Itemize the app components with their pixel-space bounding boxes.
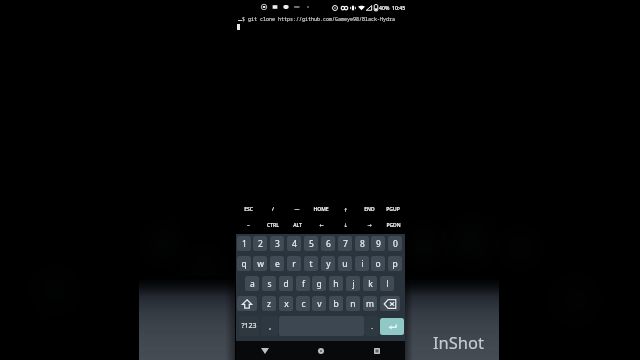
button[interactable]: PGUP: [381, 202, 405, 217]
button[interactable]: Recents: [349, 341, 405, 360]
button[interactable]: .: [364, 316, 379, 336]
staticText: c: [301, 298, 306, 310]
button[interactable]: /: [261, 202, 285, 217]
staticText: v: [317, 298, 322, 310]
button[interactable]: y: [321, 256, 335, 271]
staticText: o: [375, 258, 381, 270]
staticText: 3: [275, 238, 280, 250]
staticText: 10:45: [392, 4, 406, 11]
button[interactable]: c: [296, 296, 310, 311]
staticText: t: [309, 258, 313, 270]
button[interactable]: CTRL: [261, 217, 285, 233]
button[interactable]: 5: [304, 236, 318, 251]
button[interactable]: m: [363, 296, 377, 311]
button[interactable]: l: [380, 276, 394, 291]
staticText: .: [371, 322, 373, 331]
staticText: 8: [360, 238, 365, 250]
staticText: HOME: [313, 206, 329, 213]
staticText: PGUP: [386, 206, 400, 213]
button[interactable]: ↓: [333, 217, 357, 233]
button[interactable]: 9: [371, 236, 385, 251]
staticText: ←: [319, 222, 324, 228]
staticText: d: [283, 278, 289, 290]
button[interactable]: f: [296, 276, 310, 291]
button[interactable]: Shift: [237, 296, 257, 311]
button[interactable]: ?123: [239, 316, 259, 336]
button[interactable]: n: [346, 296, 360, 311]
button[interactable]: END: [357, 202, 381, 217]
button[interactable]: t: [304, 256, 318, 271]
button[interactable]: PGDN: [381, 217, 405, 233]
staticText: CTRL: [267, 222, 279, 229]
staticText: InShot: [433, 331, 484, 353]
staticText: 9: [376, 238, 381, 250]
button[interactable]: h: [329, 276, 343, 291]
button[interactable]: d: [279, 276, 293, 291]
button[interactable]: 3: [270, 236, 284, 251]
staticText: 0: [393, 238, 398, 250]
button[interactable]: 1: [237, 236, 251, 251]
button[interactable]: e: [270, 256, 284, 271]
button[interactable]: v: [312, 296, 326, 311]
staticText: 2: [258, 238, 263, 250]
button[interactable]: Home: [293, 341, 349, 360]
button[interactable]: 0: [388, 236, 402, 251]
staticText: z: [267, 298, 271, 310]
staticText: l: [386, 278, 389, 290]
button[interactable]: 2: [253, 236, 267, 251]
button[interactable]: q: [237, 256, 251, 271]
button[interactable]: s: [262, 276, 276, 291]
staticText: ?123: [241, 321, 257, 331]
button[interactable]: 6: [321, 236, 335, 251]
button[interactable]: w: [253, 256, 267, 271]
staticText: p: [392, 258, 398, 270]
button[interactable]: g: [312, 276, 326, 291]
staticText: →: [367, 222, 372, 228]
button[interactable]: o: [371, 256, 385, 271]
button[interactable]: u: [338, 256, 352, 271]
button[interactable]: p: [388, 256, 402, 271]
staticText: ALT: [293, 222, 302, 229]
staticText: b: [333, 298, 339, 310]
staticText: 1: [242, 238, 247, 250]
staticText: e: [275, 258, 280, 270]
button[interactable]: b: [329, 296, 343, 311]
button[interactable]: 8: [355, 236, 369, 251]
staticText: x: [284, 298, 289, 310]
button[interactable]: —: [285, 202, 309, 217]
button[interactable]: x: [279, 296, 293, 311]
button[interactable]: 4: [287, 236, 301, 251]
button[interactable]: i: [355, 256, 369, 271]
button[interactable]: ALT: [285, 217, 309, 233]
button[interactable]: k: [363, 276, 377, 291]
button[interactable]: ,: [261, 316, 278, 336]
button[interactable]: →: [357, 217, 381, 233]
button[interactable]: HOME: [309, 202, 333, 217]
button[interactable]: Enter: [380, 318, 404, 335]
staticText: ESC: [244, 206, 253, 213]
button[interactable]: a: [245, 276, 259, 291]
button[interactable]: j: [346, 276, 360, 291]
staticText: h: [333, 278, 339, 290]
button[interactable]: Backspace: [380, 296, 400, 311]
button[interactable]: ←: [309, 217, 333, 233]
staticText: PGDN: [386, 222, 401, 229]
staticText: ,: [269, 322, 271, 331]
staticText: u: [342, 258, 348, 270]
staticText: i: [361, 258, 364, 270]
button[interactable]: z: [262, 296, 276, 311]
button[interactable]: Back: [236, 341, 293, 360]
button[interactable]: ↑: [333, 202, 357, 217]
button[interactable]: ~: [236, 217, 261, 233]
staticText: ↑: [343, 207, 348, 213]
staticText: 7: [343, 238, 348, 250]
staticText: g: [316, 278, 322, 290]
button[interactable]: 7: [338, 236, 352, 251]
staticText: 40%: [379, 4, 390, 11]
staticText: ~: [247, 222, 250, 229]
button[interactable]: r: [287, 256, 301, 271]
staticText: 5: [309, 238, 314, 250]
button[interactable]: ESC: [236, 202, 261, 217]
staticText: /: [272, 206, 274, 213]
